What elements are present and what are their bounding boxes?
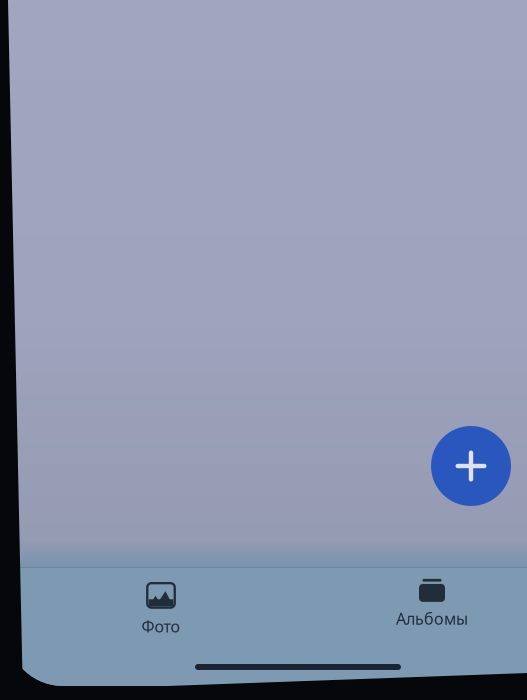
button[interactable]: New album — [431, 426, 511, 506]
staticText: Альбомы — [396, 608, 468, 629]
staticText: Фото — [141, 616, 180, 637]
button[interactable]: Альбомы — [357, 575, 507, 633]
button[interactable]: Фото — [86, 581, 236, 639]
